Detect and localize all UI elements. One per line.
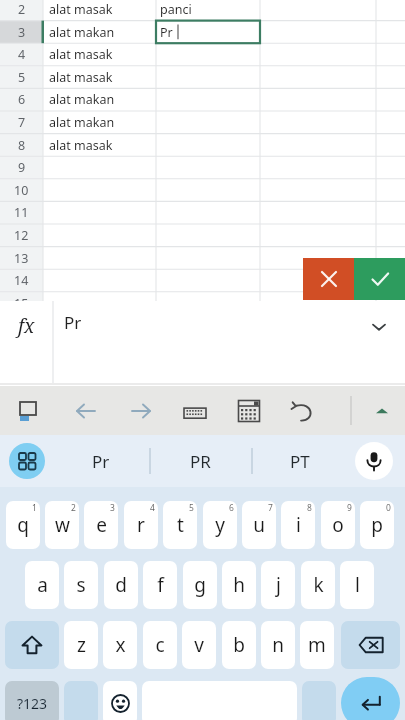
button[interactable]: 2: [0, 0, 405, 21]
staticText: 10: [14, 182, 29, 199]
button[interactable]: e: [84, 501, 118, 549]
button[interactable]: s: [64, 561, 98, 609]
staticText: c: [155, 632, 165, 658]
staticText: 8: [307, 502, 312, 514]
button[interactable]: y: [203, 501, 237, 549]
button[interactable]: n: [261, 621, 295, 669]
button[interactable]: ?123: [5, 681, 59, 720]
button[interactable]: Previous: [64, 386, 108, 435]
staticText: PT: [290, 450, 310, 473]
staticText: 8: [18, 137, 26, 154]
button[interactable]: i: [281, 501, 315, 549]
button[interactable]: Undo: [281, 386, 325, 435]
button[interactable]: 14: [0, 269, 405, 292]
button[interactable]: 12: [0, 224, 405, 247]
button[interactable]: 10: [0, 179, 405, 202]
button[interactable]: 13: [0, 247, 405, 270]
button[interactable]: a: [25, 561, 59, 609]
button[interactable]: Accept: [354, 258, 405, 300]
staticText: 7: [268, 502, 273, 514]
staticText: alat masak: [49, 69, 113, 86]
button[interactable]: Shift: [5, 621, 59, 669]
button[interactable]: k: [301, 561, 335, 609]
button[interactable]: PT: [252, 435, 348, 487]
button[interactable]: Pr: [53, 435, 149, 487]
staticText: 9: [347, 502, 352, 514]
button[interactable]: d: [104, 561, 138, 609]
staticText: 15: [14, 295, 29, 312]
button[interactable]: 4: [0, 43, 405, 66]
staticText: Pr: [64, 311, 82, 334]
staticText: 12: [14, 227, 29, 244]
button[interactable]: 5: [0, 66, 405, 89]
staticText: z: [77, 632, 86, 658]
staticText: p: [371, 512, 383, 538]
button[interactable]: Number keypad: [173, 386, 217, 435]
staticText: 3: [18, 24, 26, 41]
staticText: s: [76, 572, 86, 598]
staticText: alat masak: [49, 137, 113, 154]
staticText: alat makan: [49, 91, 115, 108]
button[interactable]: Emoji: [103, 681, 137, 720]
staticText: 2: [71, 502, 76, 514]
button[interactable]: 3: [0, 21, 405, 44]
button[interactable]: Backspace: [341, 621, 400, 669]
staticText: b: [233, 632, 245, 658]
button[interactable]: 8: [0, 134, 405, 157]
button[interactable]: Data: [227, 386, 271, 435]
button[interactable]: Cancel: [303, 258, 354, 300]
staticText: k: [313, 572, 324, 598]
button[interactable]: 11: [0, 201, 405, 224]
staticText: alat masak: [49, 46, 113, 63]
button[interactable]: q: [6, 501, 40, 549]
button[interactable]: o: [321, 501, 355, 549]
button[interactable]: b: [222, 621, 256, 669]
button[interactable]: Next: [119, 386, 163, 435]
button[interactable]: Select range: [8, 386, 52, 435]
button[interactable]: z: [64, 621, 98, 669]
staticText: ?123: [17, 694, 48, 713]
button[interactable]: r: [124, 501, 158, 549]
staticText: o: [332, 512, 344, 538]
staticText: a: [37, 572, 48, 598]
staticText: 4: [18, 46, 26, 63]
staticText: 1: [32, 502, 37, 514]
staticText: 14: [14, 272, 29, 289]
button[interactable]: l: [340, 561, 374, 609]
staticText: alat makan: [49, 114, 115, 131]
button[interactable]: Enter: [341, 677, 400, 720]
button[interactable]: PR: [152, 435, 248, 487]
button[interactable]: t: [163, 501, 197, 549]
button[interactable]: w: [45, 501, 79, 549]
staticText: PR: [190, 450, 211, 473]
staticText: 6: [229, 502, 234, 514]
staticText: alat makan: [49, 24, 115, 41]
button[interactable]: x: [103, 621, 137, 669]
button[interactable]: 9: [0, 156, 405, 179]
staticText: t: [177, 512, 184, 538]
button[interactable]: h: [222, 561, 256, 609]
button[interactable]: u: [242, 501, 276, 549]
button[interactable]: p: [360, 501, 394, 549]
button[interactable]: m: [300, 621, 334, 669]
button[interactable]: Expand: [365, 313, 393, 341]
staticText: m: [308, 632, 326, 658]
button[interactable]: Collapse: [358, 386, 405, 435]
button[interactable]: g: [183, 561, 217, 609]
button[interactable]: 6: [0, 88, 405, 111]
button[interactable]: Functions: [0, 301, 53, 351]
button[interactable]: 7: [0, 111, 405, 134]
button[interactable]: Voice input: [355, 442, 393, 480]
staticText: u: [253, 512, 265, 538]
staticText: Pr: [160, 24, 173, 41]
button[interactable]: c: [143, 621, 177, 669]
button[interactable]: f: [143, 561, 177, 609]
button[interactable]: 15: [0, 292, 405, 315]
button[interactable]: More options: [9, 443, 45, 479]
button[interactable]: j: [261, 561, 295, 609]
button[interactable]: v: [182, 621, 216, 669]
staticText: e: [96, 512, 107, 538]
